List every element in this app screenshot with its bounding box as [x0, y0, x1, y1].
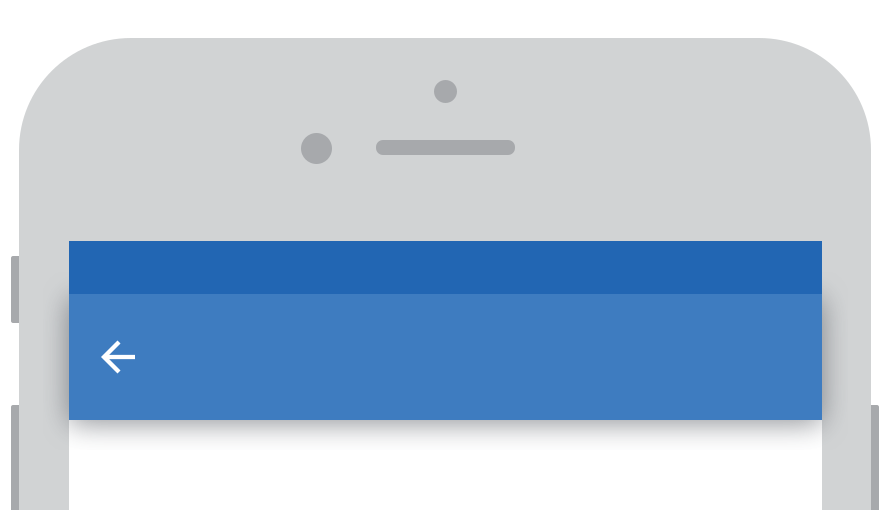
button[interactable]: Back: [100, 325, 164, 389]
